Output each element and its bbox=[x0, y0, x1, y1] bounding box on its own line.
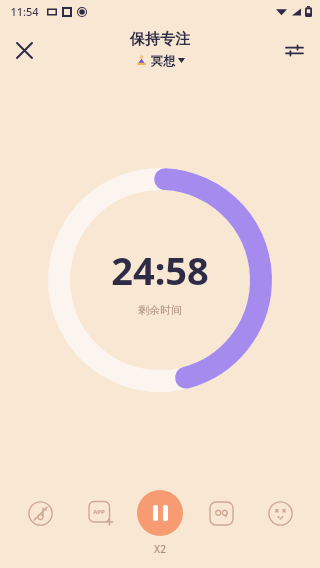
staticText: X2 bbox=[154, 542, 166, 556]
button[interactable]: Timer bbox=[199, 491, 243, 535]
staticText: 剩余时间 bbox=[138, 303, 182, 317]
button[interactable]: Add app bbox=[78, 491, 122, 535]
staticText: 11:54 bbox=[10, 4, 39, 19]
button[interactable]: 冥想 bbox=[132, 52, 189, 69]
staticText: 24:58 bbox=[111, 244, 209, 296]
button[interactable]: Mute music bbox=[18, 491, 62, 535]
staticText: APP bbox=[93, 508, 105, 516]
button[interactable]: Pause bbox=[137, 490, 183, 536]
staticText: 保持专注 bbox=[130, 30, 190, 49]
button[interactable]: Settings bbox=[276, 32, 312, 68]
staticText: 冥想 bbox=[151, 53, 175, 68]
button[interactable]: Close bbox=[6, 32, 42, 68]
button[interactable]: Mood bbox=[258, 491, 302, 535]
